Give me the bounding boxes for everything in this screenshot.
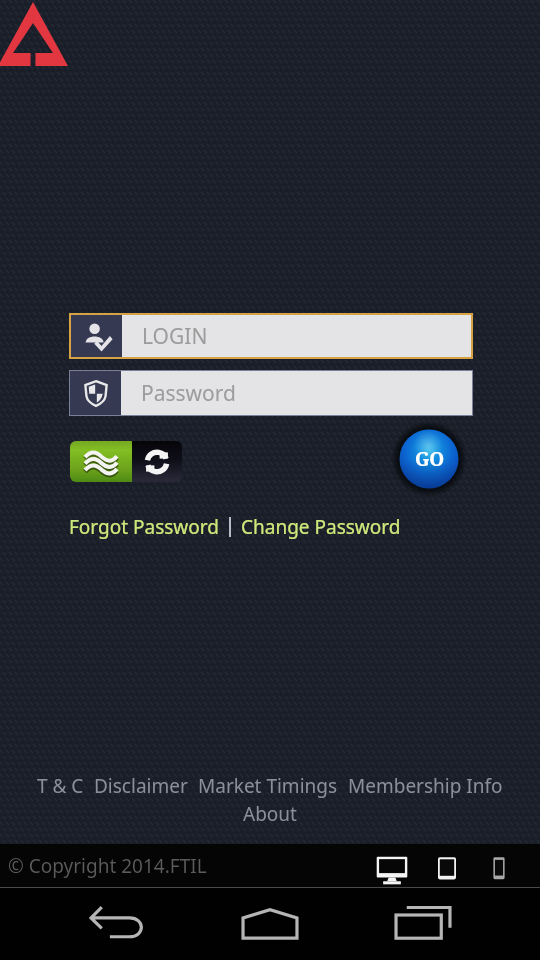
button[interactable]: Mobile site [479, 848, 519, 888]
other: App logo [0, 2, 68, 66]
button[interactable]: LOGIN [71, 315, 471, 357]
button[interactable]: Password [70, 371, 472, 415]
button[interactable]: Change Password [241, 514, 401, 540]
button[interactable]: Forgot Password [69, 514, 219, 540]
button[interactable]: Refresh captcha [132, 441, 182, 482]
button[interactable]: T & C [32, 773, 89, 799]
button[interactable]: Captcha image [70, 441, 132, 482]
staticText: GO [415, 446, 444, 472]
button[interactable]: Desktop site [372, 848, 412, 888]
button[interactable]: Tablet site [427, 848, 467, 888]
button[interactable]: Market Timings [193, 773, 343, 799]
button[interactable]: Disclaimer [89, 773, 193, 799]
staticText: Password [141, 379, 236, 408]
staticText: LOGIN [142, 322, 208, 351]
button[interactable]: Home [235, 889, 305, 959]
button[interactable]: Recents [388, 889, 458, 959]
button[interactable]: Back [83, 889, 153, 959]
button[interactable]: About [243, 799, 297, 827]
button[interactable]: Membership Info [343, 773, 508, 799]
button[interactable]: GO - sign in [391, 421, 467, 497]
staticText: © Copyright 2014.FTIL [8, 853, 207, 879]
